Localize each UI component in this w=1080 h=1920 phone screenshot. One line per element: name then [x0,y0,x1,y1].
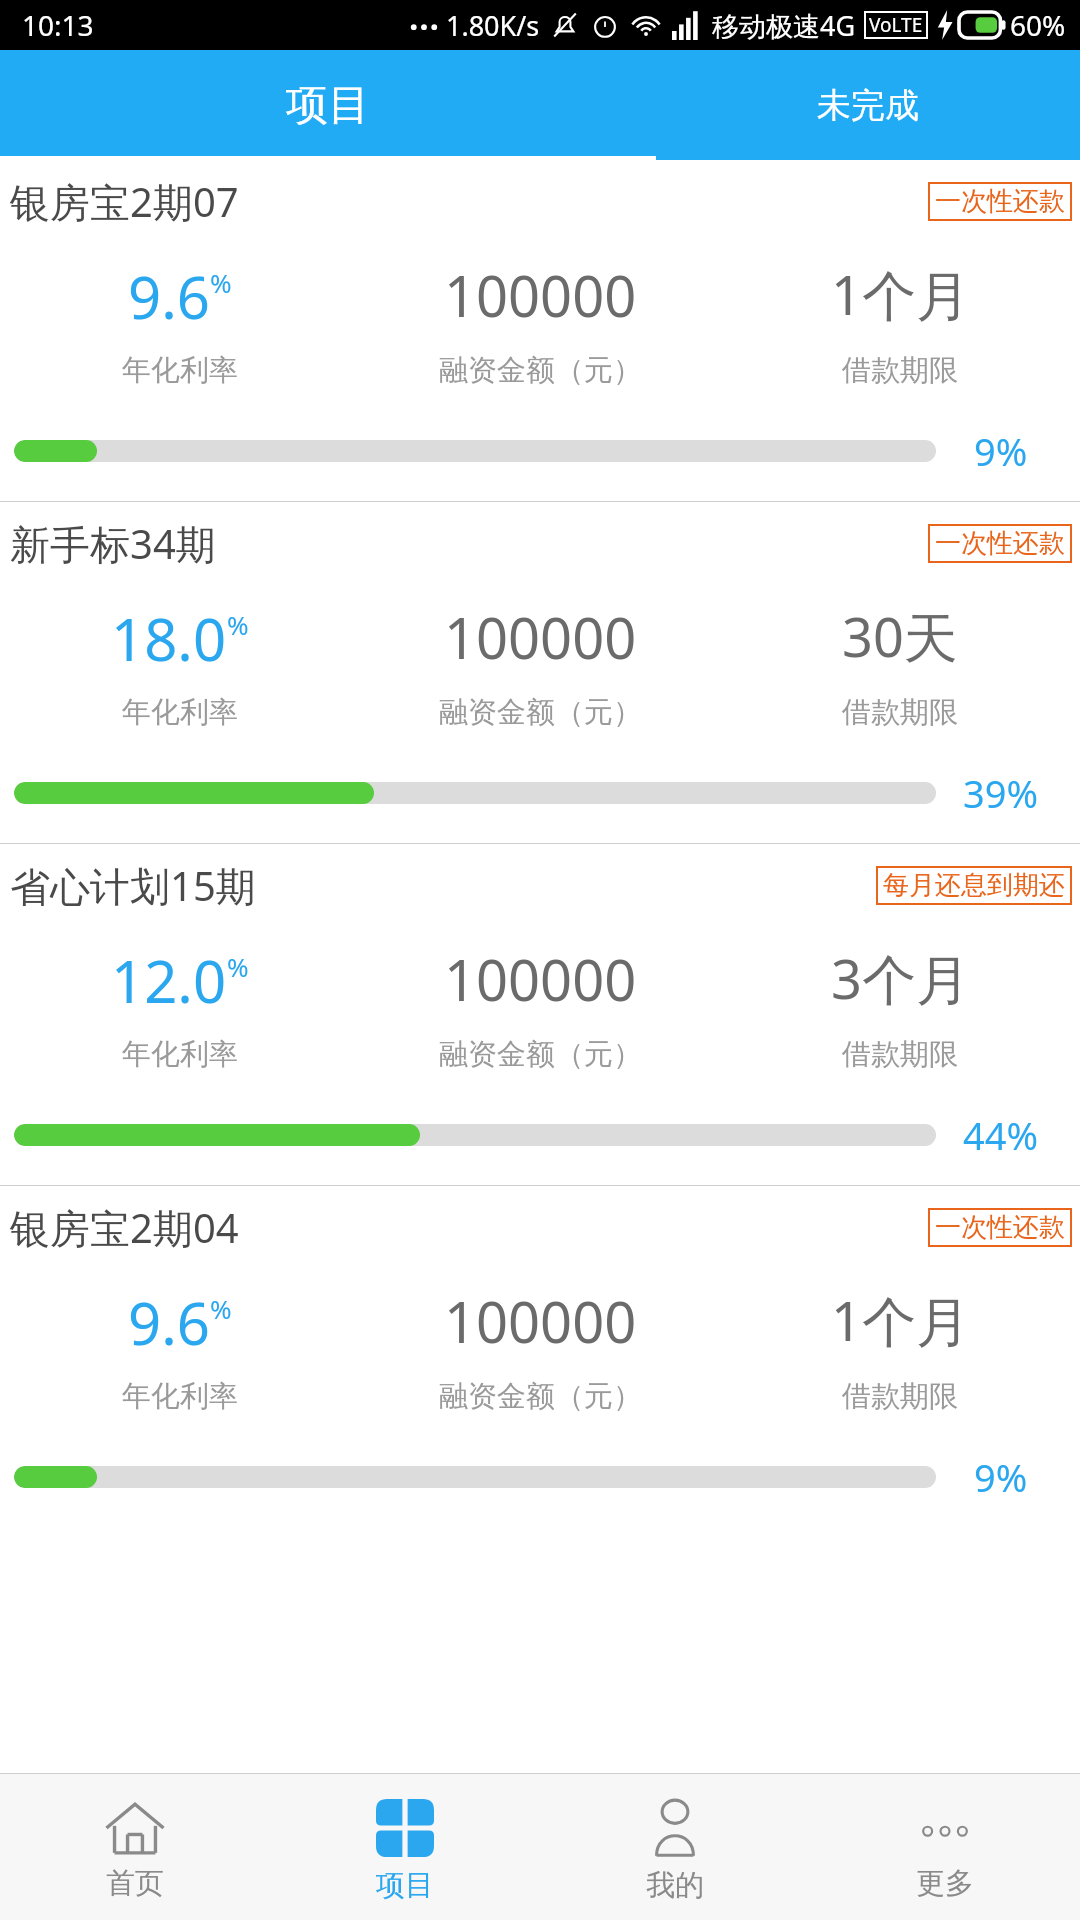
staticText: 融资金额（元） [439,1036,642,1073]
button[interactable]: 未完成 [656,50,1080,160]
staticText: 1.80K/s [446,7,540,44]
staticText: 项目 [286,79,370,132]
staticText: 年化利率 [122,1378,238,1415]
staticText: 一次性还款 [935,1211,1065,1244]
staticText: 更多 [916,1865,974,1902]
button[interactable]: 项目 [0,50,656,160]
staticText: 100000 [444,1283,637,1359]
staticText: 每月还息到期还 [883,869,1065,902]
button[interactable]: 项目 [270,1774,540,1920]
staticText: 39% [963,767,1039,819]
staticText: % [210,265,232,300]
staticText: 年化利率 [122,1036,238,1073]
staticText: 借款期限 [842,1378,958,1415]
staticText: 移动极速4G [712,7,856,44]
button[interactable]: 我的 [540,1774,810,1920]
staticText: 1个月 [831,1283,970,1357]
button[interactable]: 省心计划15期 [0,844,1080,1185]
staticText: % [227,607,249,642]
staticText: 100000 [444,941,637,1017]
staticText: 100000 [444,257,637,333]
staticText: 1个月 [831,257,970,331]
staticText: % [210,1291,232,1326]
staticText: 年化利率 [122,352,238,389]
staticText: 12.0 [111,941,227,1020]
staticText: 9% [974,1451,1028,1503]
button[interactable]: 首页 [0,1774,270,1920]
staticText: 未完成 [817,84,919,127]
staticText: 一次性还款 [935,527,1065,560]
staticText: 项目 [376,1867,434,1904]
staticText: 10:13 [22,6,94,44]
button[interactable]: 更多 [810,1774,1080,1920]
staticText: 18.0 [111,599,227,678]
staticText: 一次性还款 [935,185,1065,218]
staticText: 100000 [444,599,637,675]
staticText: 新手标34期 [10,516,216,571]
staticText: 融资金额（元） [439,352,642,389]
staticText: 省心计划15期 [10,858,256,913]
staticText: 9.6 [128,1283,210,1362]
staticText: 借款期限 [842,1036,958,1073]
staticText: 年化利率 [122,694,238,731]
staticText: 44% [963,1109,1039,1161]
staticText: 融资金额（元） [439,1378,642,1415]
staticText: 借款期限 [842,352,958,389]
staticText: 我的 [646,1867,704,1904]
staticText: % [227,949,249,984]
staticText: 30天 [842,599,958,673]
button[interactable]: 银房宝2期04 [0,1186,1080,1527]
staticText: 9% [974,425,1028,477]
button[interactable]: 银房宝2期07 [0,160,1080,501]
staticText: 银房宝2期04 [10,1200,239,1255]
staticText: 3个月 [831,941,970,1015]
staticText: 借款期限 [842,694,958,731]
button[interactable]: 新手标34期 [0,502,1080,843]
staticText: 60% [1010,6,1066,44]
staticText: VoLTE [869,12,923,38]
staticText: 融资金额（元） [439,694,642,731]
staticText: 9.6 [128,257,210,336]
staticText: 首页 [106,1865,164,1902]
staticText: 银房宝2期07 [10,174,239,229]
